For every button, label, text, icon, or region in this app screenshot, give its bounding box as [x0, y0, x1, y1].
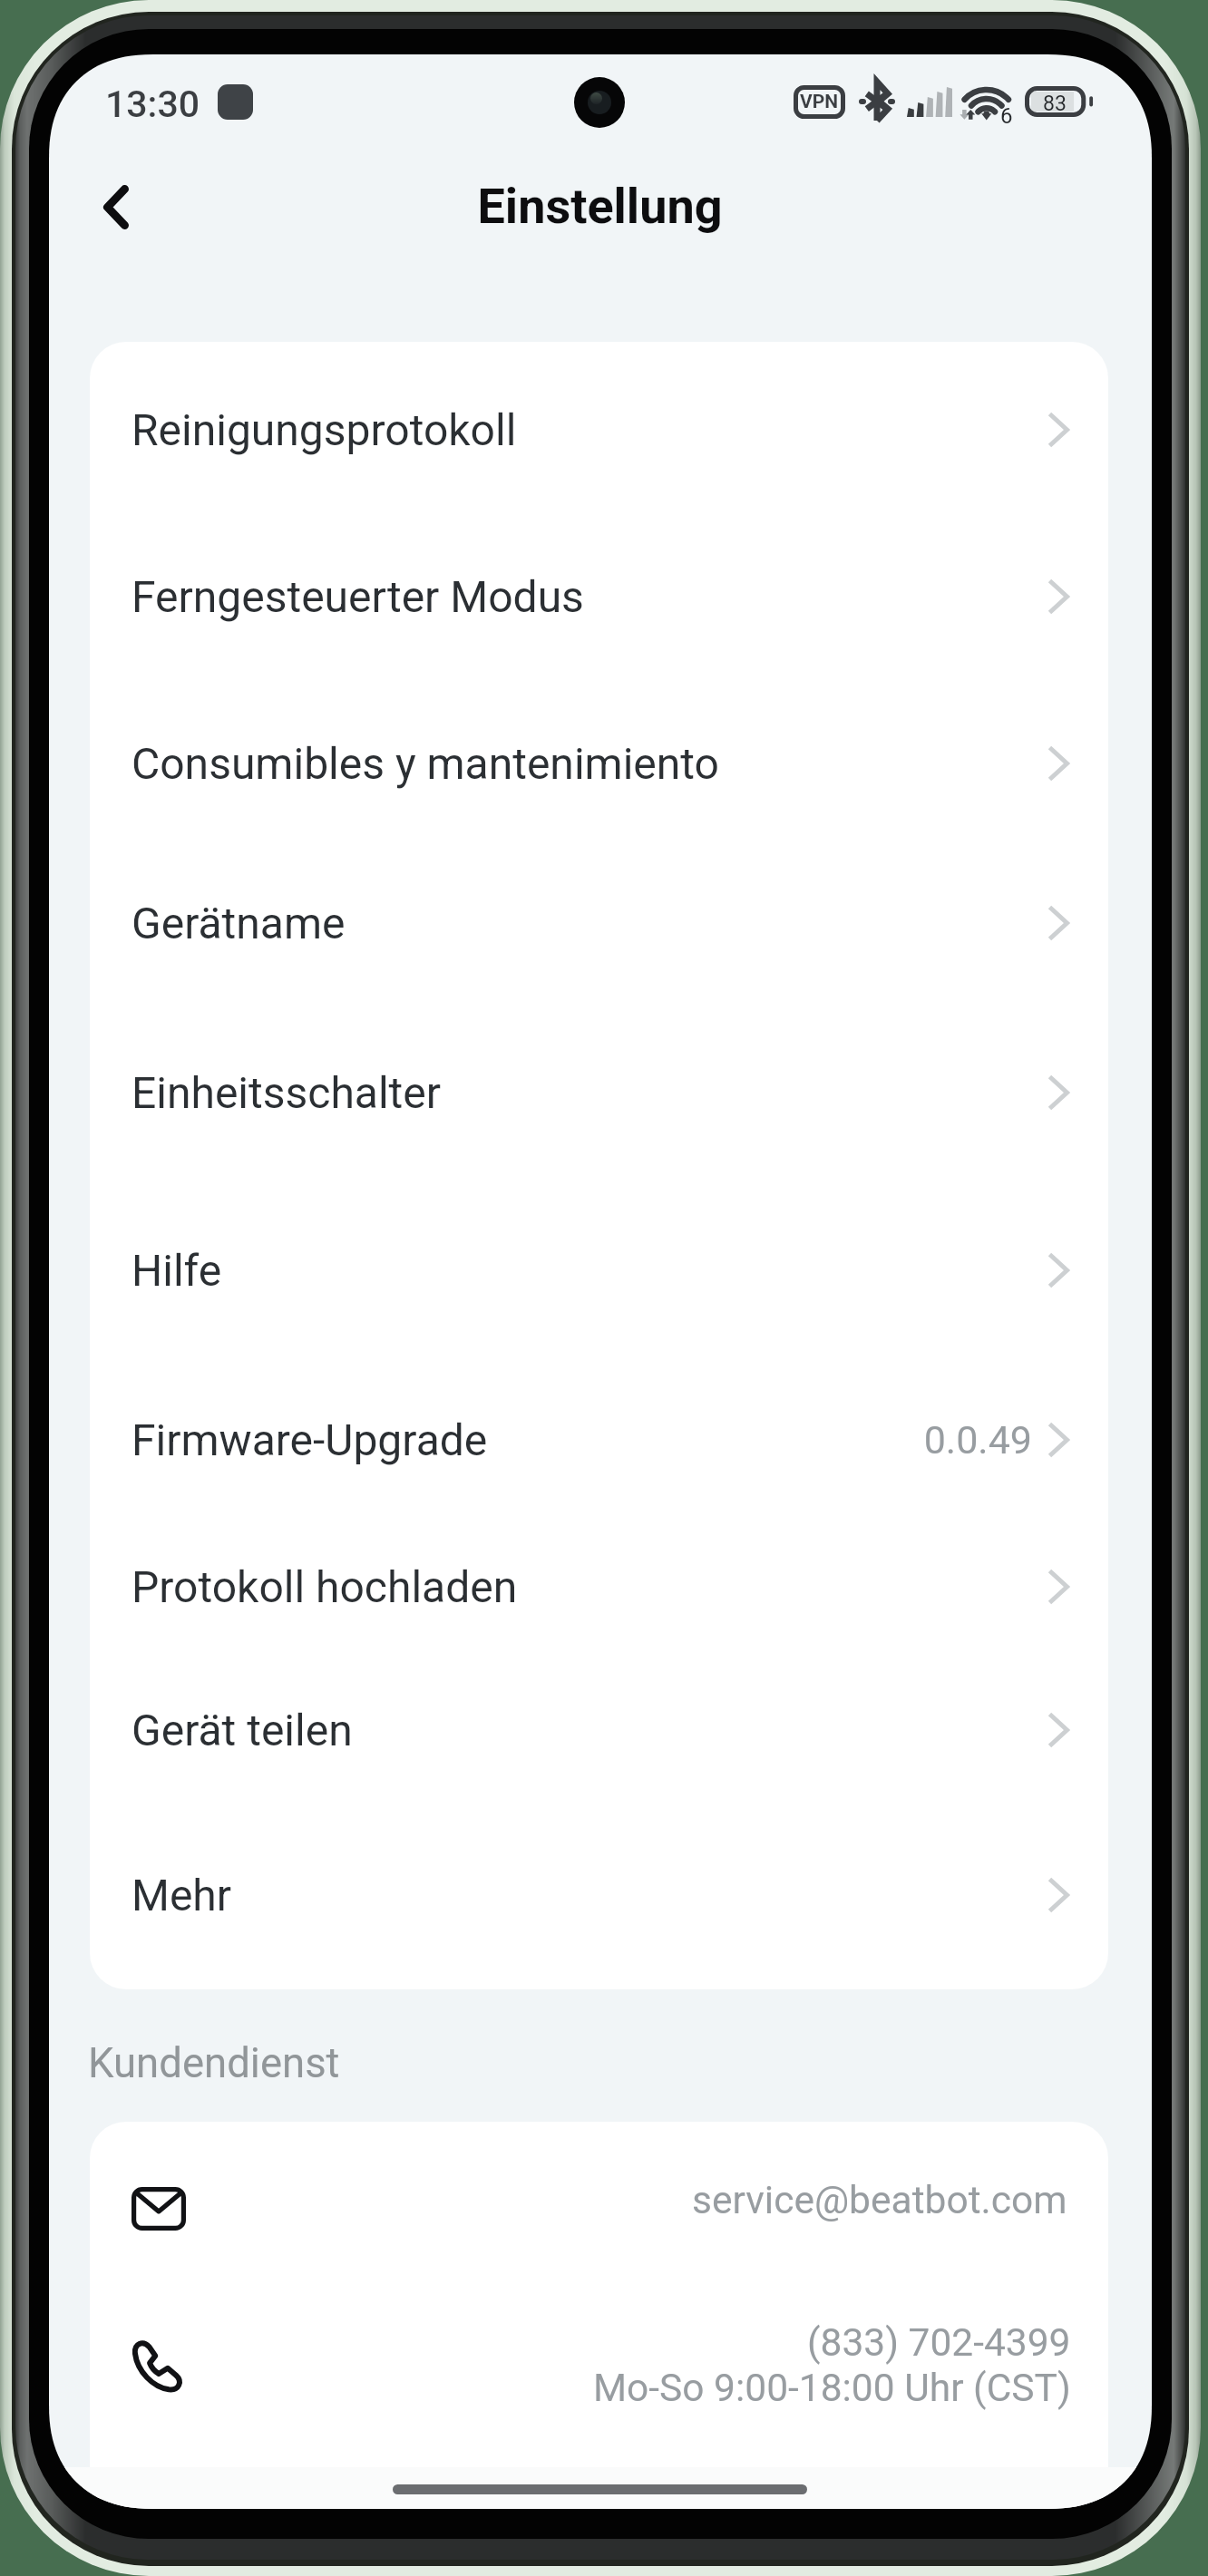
button[interactable]: Reinigungsprotokoll [90, 342, 1108, 500]
staticText: Reinigungsprotokoll [132, 404, 517, 455]
button[interactable]: Back [71, 161, 161, 252]
button[interactable]: (833) 702-4399 [90, 2276, 1108, 2467]
staticText: Mo-So 9:00-18:00 Uhr (CST) [593, 2366, 1071, 2411]
staticText: 6 [1000, 103, 1013, 129]
button[interactable]: Protokoll hochladen [90, 1500, 1108, 1645]
staticText: Gerätname [132, 898, 346, 948]
staticText: VPN [800, 91, 839, 113]
staticText: Ferngesteuerter Modus [132, 571, 584, 622]
staticText: Gerät teilen [132, 1705, 353, 1755]
button[interactable]: Consumibles y mantenimiento [90, 666, 1108, 831]
button[interactable]: Einheitsschalter [90, 995, 1108, 1168]
button[interactable]: Gerätname [90, 830, 1108, 994]
button[interactable]: Ferngesteuerter Modus [90, 500, 1108, 666]
button[interactable]: Gerät teilen [90, 1645, 1108, 1799]
staticText: Kundendienst [88, 2039, 340, 2087]
staticText: 83 [1043, 92, 1067, 116]
staticText: Mehr [132, 1870, 232, 1920]
staticText: service@beatbot.com [692, 2178, 1067, 2223]
staticText: Einheitsschalter [132, 1067, 442, 1118]
button[interactable]: Firmware-Upgrade [90, 1341, 1108, 1500]
staticText: 0.0.49 [923, 1417, 1032, 1463]
button[interactable]: Hilfe [90, 1168, 1108, 1342]
staticText: Consumibles y mantenimiento [132, 738, 719, 789]
staticText: (833) 702-4399 [807, 2320, 1071, 2366]
staticText: Hilfe [132, 1245, 222, 1296]
staticText: 13:30 [105, 83, 200, 126]
staticText: Einstellung [477, 178, 723, 235]
staticText: Firmware-Upgrade [132, 1414, 488, 1465]
staticText: Protokoll hochladen [132, 1561, 518, 1612]
button[interactable]: service@beatbot.com [90, 2122, 1108, 2276]
button[interactable]: Mehr [90, 1799, 1108, 1989]
